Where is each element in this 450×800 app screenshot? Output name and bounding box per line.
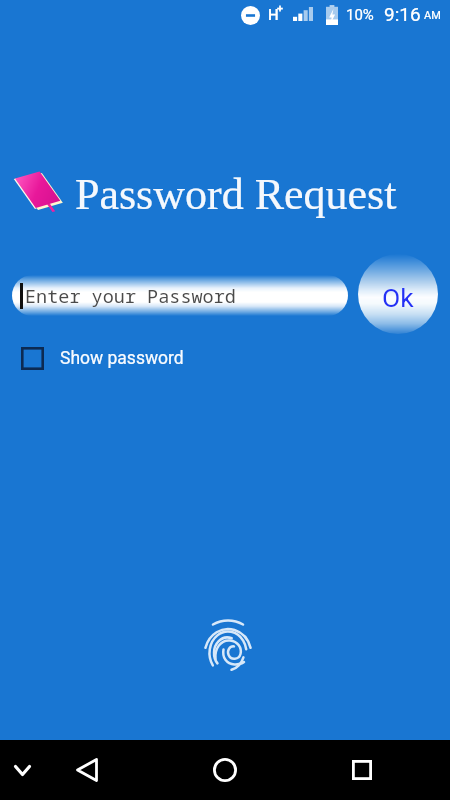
button[interactable]: Home [195,740,255,800]
staticText: + [277,2,283,15]
staticText: Enter your Password [25,283,236,308]
button[interactable]: Back [57,740,117,800]
button[interactable]: Enter your Password [12,275,348,316]
staticText: 9:16 [384,3,421,25]
button[interactable]: Hide keyboard [0,740,45,800]
staticText: Ok [382,282,414,313]
button[interactable]: Recents [332,740,392,800]
staticText: 10% [346,6,374,24]
button[interactable]: Unlock with fingerprint [203,619,253,673]
staticText: H [268,6,279,24]
staticText: Password Request [75,170,397,219]
staticText: Show password [60,348,184,369]
button[interactable]: Ok [358,254,438,334]
button[interactable]: Show password [21,345,184,371]
staticText: AM [424,9,441,22]
